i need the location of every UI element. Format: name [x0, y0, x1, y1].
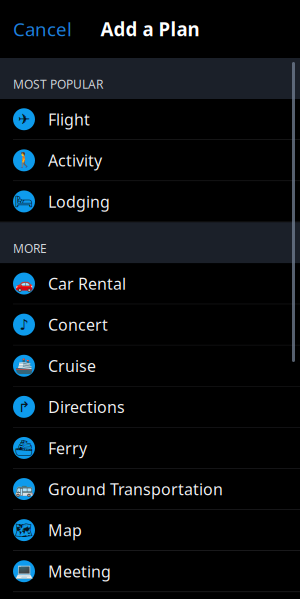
button[interactable]: 🚢: [0, 345, 300, 386]
button[interactable]: ⛴: [0, 428, 300, 468]
button[interactable]: 🛏: [0, 181, 300, 222]
button[interactable]: 🚗: [0, 263, 300, 304]
staticText: Ferry: [48, 437, 87, 458]
staticText: 🚢: [15, 357, 33, 374]
staticText: Add a Plan: [100, 17, 199, 41]
button[interactable]: 🗺: [0, 510, 300, 550]
staticText: 🗺: [14, 522, 33, 539]
staticText: 🛏: [14, 193, 33, 210]
staticText: 🚶: [15, 152, 33, 169]
button[interactable]: 💻: [0, 551, 300, 591]
button[interactable]: ↱: [0, 387, 300, 427]
staticText: Cruise: [48, 355, 96, 376]
button[interactable]: ♪: [0, 304, 300, 345]
staticText: 🚗: [15, 275, 33, 292]
staticText: Concert: [48, 314, 108, 335]
button[interactable]: Cancel: [0, 9, 82, 49]
staticText: Map: [48, 519, 82, 541]
staticText: Car Rental: [48, 273, 126, 294]
staticText: Ground Transportation: [48, 478, 223, 500]
button[interactable]: ✈: [0, 99, 300, 139]
staticText: Meeting: [48, 561, 111, 582]
button[interactable]: 🚌: [0, 469, 300, 509]
staticText: Activity: [48, 150, 102, 171]
staticText: Cancel: [13, 17, 72, 41]
staticText: ✈: [18, 111, 30, 127]
button[interactable]: 🚶: [0, 140, 300, 181]
staticText: 🚌: [15, 481, 33, 497]
staticText: ♪: [19, 316, 28, 333]
staticText: 💻: [15, 563, 33, 580]
staticText: Lodging: [48, 191, 110, 212]
staticText: ↱: [18, 398, 30, 415]
staticText: ⛴: [14, 440, 33, 456]
staticText: MOST POPULAR: [13, 76, 103, 92]
staticText: Flight: [48, 109, 90, 130]
staticText: MORE: [13, 240, 47, 256]
staticText: Directions: [48, 396, 125, 417]
